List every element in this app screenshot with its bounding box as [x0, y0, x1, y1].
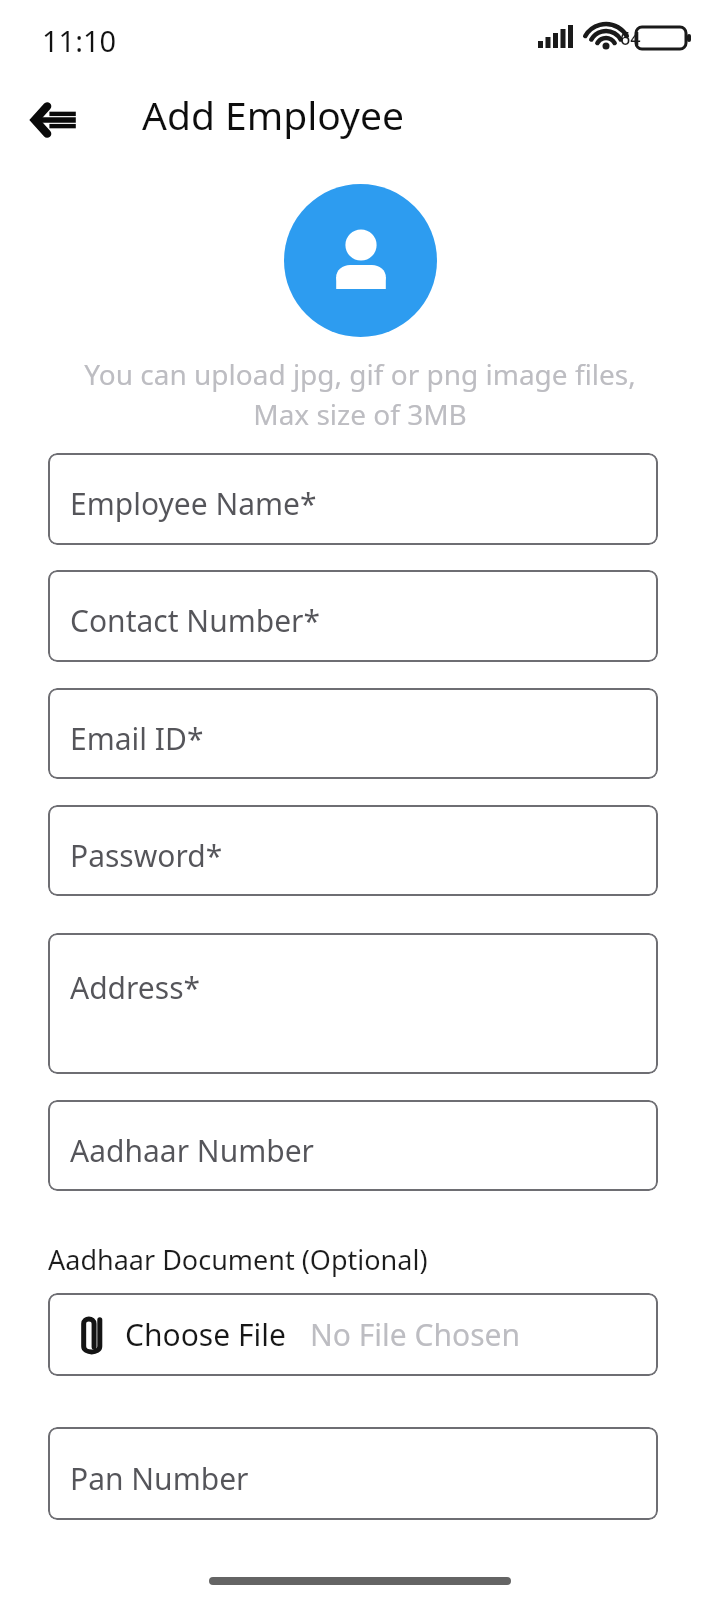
staticText: Aadhaar Document (Optional) — [48, 1241, 428, 1278]
button[interactable]: Password* — [48, 805, 658, 896]
staticText: No File Chosen — [310, 1314, 520, 1355]
staticText: Choose File — [125, 1314, 286, 1355]
staticText: 64 — [620, 26, 641, 51]
staticText: Contact Number* — [70, 600, 321, 641]
staticText: 11:10 — [42, 21, 117, 60]
button[interactable]: Email ID* — [48, 688, 658, 779]
button[interactable]: Employee Name* — [48, 453, 658, 545]
button[interactable]: Address* — [48, 933, 658, 1074]
button[interactable]: Choose File — [48, 1293, 658, 1376]
button[interactable]: Pan Number — [48, 1427, 658, 1520]
staticText: Pan Number — [70, 1458, 249, 1499]
staticText: Add Employee — [142, 88, 404, 141]
button[interactable]: Contact Number* — [48, 570, 658, 662]
staticText: Password* — [70, 835, 223, 876]
staticText: Address* — [70, 967, 201, 1008]
staticText: Employee Name* — [70, 483, 317, 524]
button[interactable]: Upload profile photo — [284, 184, 437, 337]
staticText: You can upload jpg, gif or png image fil… — [0, 355, 720, 434]
staticText: Aadhaar Number — [70, 1130, 314, 1171]
button[interactable]: Back — [22, 90, 90, 150]
button[interactable]: Aadhaar Number — [48, 1100, 658, 1191]
staticText: Email ID* — [70, 718, 204, 759]
